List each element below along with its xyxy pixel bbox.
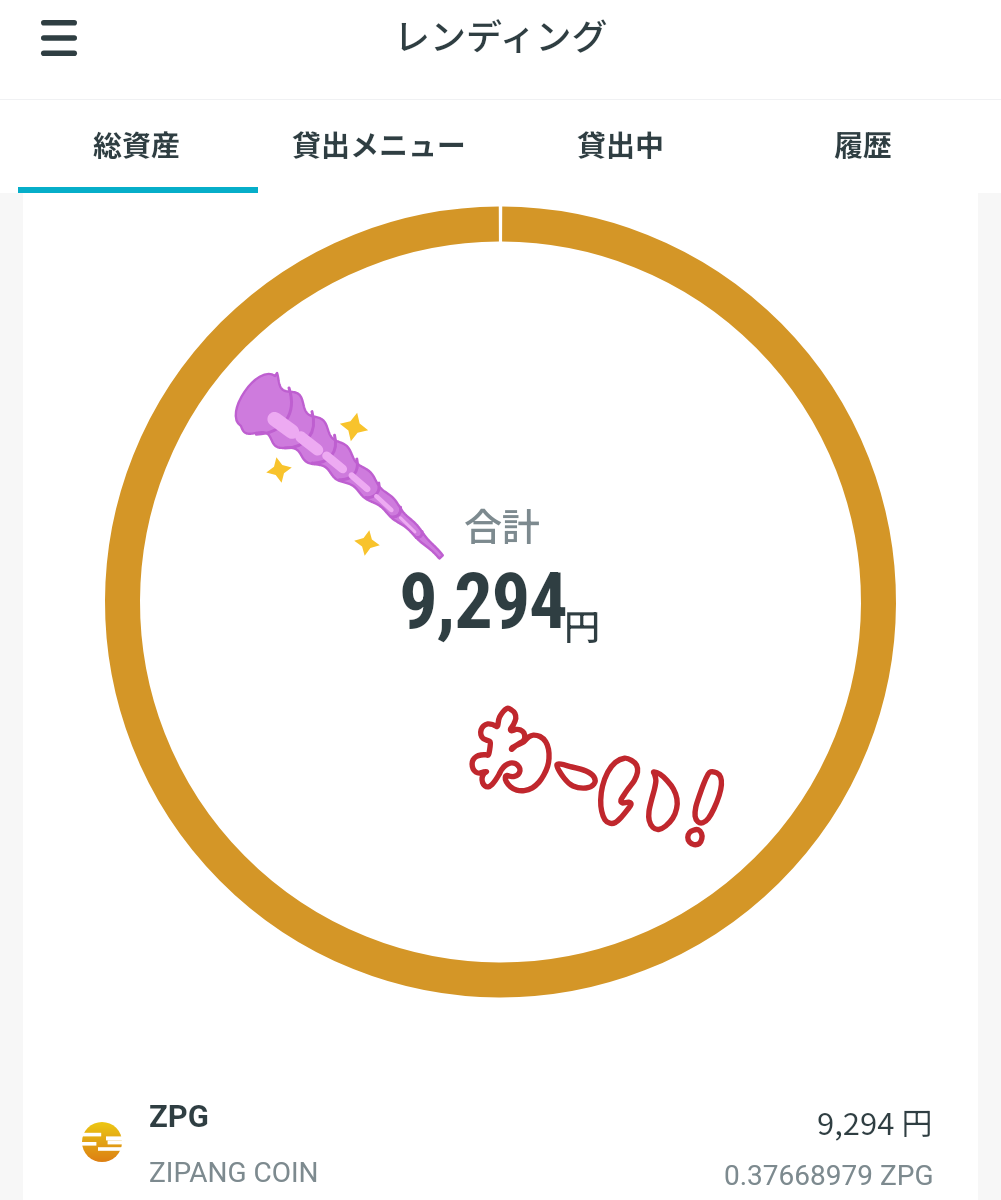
button[interactable]: Open navigation menu: [23, 2, 95, 74]
staticText: 合計: [464, 497, 541, 552]
button[interactable]: 貸出中: [500, 100, 742, 193]
staticText: ZIPANG COIN: [149, 1156, 319, 1189]
staticText: 9,294: [399, 557, 567, 647]
staticText: レンディング: [394, 8, 608, 60]
staticText: 貸出メニュー: [292, 122, 467, 164]
staticText: 9,294 円: [817, 1099, 933, 1144]
staticText: ZPG: [149, 1098, 209, 1134]
staticText: 円: [564, 598, 601, 650]
button[interactable]: 貸出メニュー: [258, 100, 500, 193]
staticText: 総資産: [93, 122, 181, 164]
staticText: 履歴: [834, 122, 893, 164]
button[interactable]: 履歴: [742, 100, 984, 193]
button[interactable]: ZPG: [23, 1048, 978, 1200]
staticText: 0.37668979 ZPG: [724, 1159, 934, 1192]
staticText: 貸出中: [577, 122, 665, 164]
button[interactable]: 総資産: [16, 100, 258, 193]
